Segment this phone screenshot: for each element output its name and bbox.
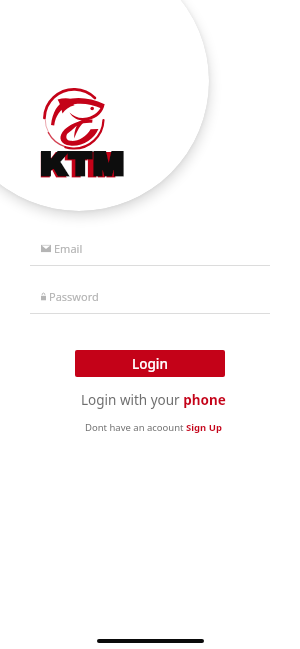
button[interactable]: Login — [75, 350, 225, 377]
button[interactable]: Password — [30, 286, 270, 306]
staticText: Password — [49, 289, 99, 304]
staticText: Login with your phone — [81, 391, 226, 409]
button[interactable]: Login with your phone — [3, 390, 300, 410]
staticText: Email — [54, 241, 83, 256]
button[interactable]: Email — [30, 238, 270, 258]
staticText: Login — [132, 355, 168, 373]
staticText: KTM — [39, 148, 115, 184]
staticText: Dont have an acoount Sign Up — [85, 421, 222, 434]
button[interactable]: Dont have an acoount Sign Up — [3, 419, 300, 435]
staticText: KTM — [39, 146, 124, 183]
